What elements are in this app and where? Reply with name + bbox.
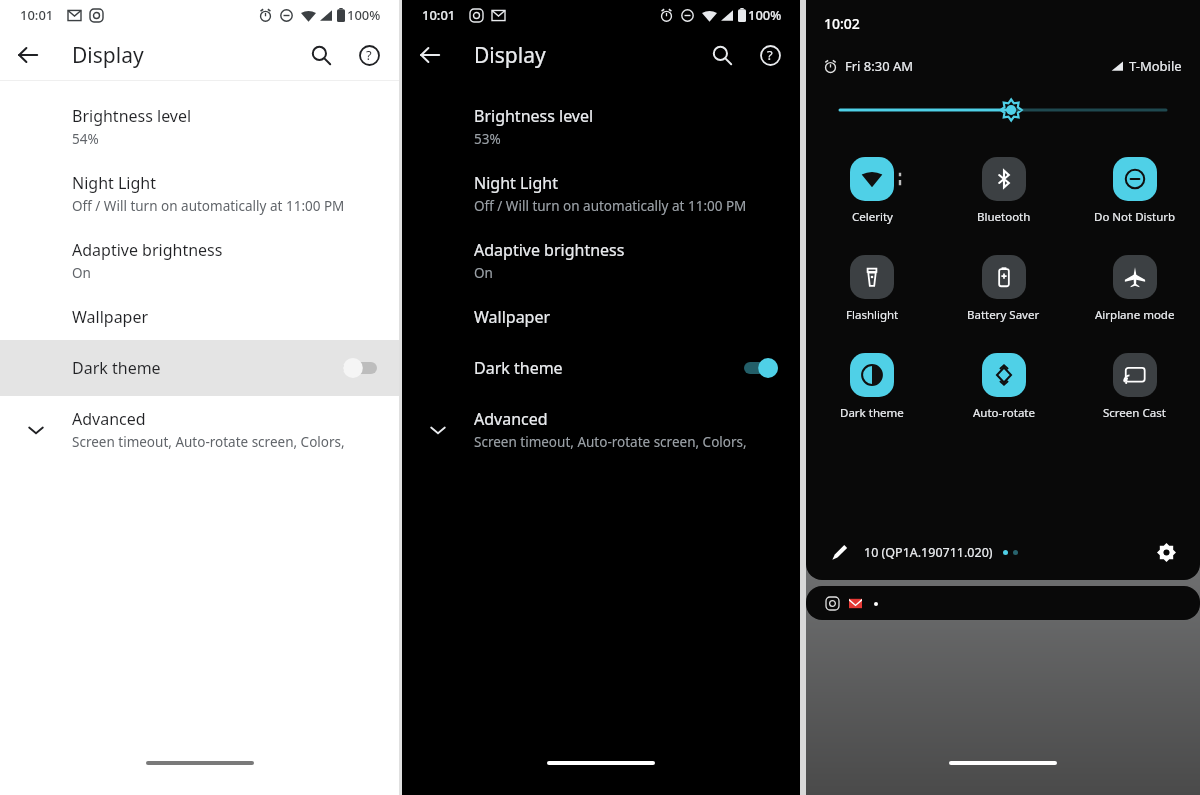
staticText: Auto-rotate <box>973 405 1035 421</box>
staticText: Wallpaper <box>474 306 551 328</box>
staticText: Off / Will turn on automatically at 11:0… <box>72 197 345 215</box>
staticText: Wallpaper <box>72 306 149 328</box>
button[interactable]: Airplane mode <box>1069 251 1200 327</box>
staticText: Advanced <box>72 408 146 430</box>
button[interactable]: Auto-rotate <box>938 349 1069 425</box>
staticText: Dark theme <box>72 357 343 379</box>
staticText: Night Light <box>474 172 558 194</box>
button[interactable]: Back <box>410 35 450 75</box>
button[interactable]: Brightness level <box>0 93 399 160</box>
staticText: 10:01 <box>20 6 54 24</box>
staticText: 54% <box>72 130 99 148</box>
button[interactable]: Wallpaper <box>402 294 800 340</box>
staticText: 100% <box>748 6 782 24</box>
button[interactable]: Advanced <box>402 396 800 463</box>
staticText: Screen Cast <box>1103 405 1166 421</box>
staticText: ? <box>767 46 773 64</box>
staticText: Fri 8:30 AM <box>845 57 914 75</box>
button[interactable]: Battery Saver <box>938 251 1069 327</box>
staticText: T-Mobile <box>1129 57 1182 75</box>
staticText: Night Light <box>72 172 156 194</box>
button[interactable]: Wallpaper <box>0 294 399 340</box>
button[interactable]: Advanced <box>0 396 399 463</box>
button[interactable]: Dark theme <box>0 340 399 396</box>
staticText: Dark theme <box>474 357 744 379</box>
staticText: Advanced <box>474 408 548 430</box>
button[interactable]: Flashlight <box>806 251 938 327</box>
staticText: Screen timeout, Auto-rotate screen, Colo… <box>474 433 780 451</box>
button[interactable]: Settings <box>1152 538 1180 566</box>
staticText: Bluetooth <box>977 209 1031 225</box>
staticText: Off / Will turn on automatically at 11:0… <box>474 197 747 215</box>
button[interactable]: Brightness level <box>402 93 800 160</box>
staticText: Airplane mode <box>1095 307 1175 323</box>
button[interactable]: Brightness <box>840 99 1166 121</box>
button[interactable]: Do Not Disturb <box>1069 153 1200 229</box>
staticText: Do Not Disturb <box>1094 209 1176 225</box>
staticText: Celerity <box>852 209 893 225</box>
staticText: Display <box>474 41 546 70</box>
button[interactable]: Help <box>750 35 790 75</box>
staticText: On <box>72 264 91 282</box>
button[interactable]: Help <box>349 35 389 75</box>
button[interactable]: Search <box>702 35 742 75</box>
staticText: Screen timeout, Auto-rotate screen, Colo… <box>72 433 379 451</box>
button[interactable]: Night Light <box>402 160 800 227</box>
staticText: Brightness level <box>474 105 594 127</box>
button[interactable]: Screen Cast <box>1069 349 1200 425</box>
staticText: Dark theme <box>840 405 904 421</box>
button[interactable]: Search <box>301 35 341 75</box>
staticText: Flashlight <box>846 307 899 323</box>
staticText: 100% <box>347 6 381 24</box>
staticText: 10:02 <box>824 14 860 33</box>
button[interactable]: Night Light <box>0 160 399 227</box>
staticText: 10:01 <box>422 6 456 24</box>
staticText: On <box>474 264 493 282</box>
staticText: 10 (QP1A.190711.020) <box>864 544 993 561</box>
button[interactable]: Dark theme <box>806 349 938 425</box>
staticText: 53% <box>474 130 501 148</box>
button[interactable]: Back <box>8 35 48 75</box>
button[interactable]: Adaptive brightness <box>402 227 800 294</box>
button[interactable]: Edit <box>826 539 852 565</box>
button[interactable]: Celerity <box>806 153 938 229</box>
staticText: Battery Saver <box>967 307 1040 323</box>
staticText: Brightness level <box>72 105 192 127</box>
button[interactable]: Dark theme <box>402 340 800 396</box>
staticText: ? <box>366 46 372 64</box>
staticText: Adaptive brightness <box>474 239 625 261</box>
button[interactable]: Adaptive brightness <box>0 227 399 294</box>
staticText: Display <box>72 41 144 70</box>
button[interactable]: Bluetooth <box>938 153 1069 229</box>
staticText: Adaptive brightness <box>72 239 223 261</box>
